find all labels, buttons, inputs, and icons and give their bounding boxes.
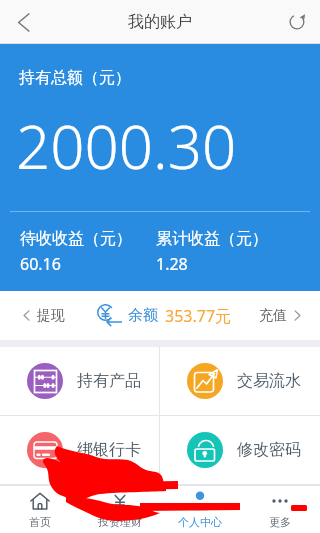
staticText: 353.77元 (165, 305, 232, 327)
button[interactable]: 充值 (240, 291, 320, 340)
button[interactable]: 交易流水 (160, 347, 320, 415)
staticText: 修改密码 (237, 440, 301, 460)
button[interactable]: 余额 (88, 291, 240, 340)
staticText: 首页 (29, 515, 51, 529)
staticText: 余额 (128, 306, 158, 325)
staticText: 60.16 (20, 253, 61, 275)
button[interactable]: 绑银行卡 (0, 416, 159, 484)
button[interactable]: Back (0, 0, 46, 44)
staticText: 提现 (37, 307, 65, 325)
staticText: 持有产品 (77, 371, 141, 391)
button[interactable]: 首页 (0, 486, 80, 533)
staticText: 充值 (259, 307, 287, 325)
staticText: 持有总额（元） (19, 68, 131, 88)
staticText: 1.28 (156, 253, 188, 275)
button[interactable]: 个人中心 (160, 486, 240, 533)
button[interactable]: 提现 (0, 291, 88, 340)
staticText: 绑银行卡 (77, 440, 141, 460)
button[interactable]: 修改密码 (160, 416, 320, 484)
staticText: 个人中心 (178, 515, 222, 529)
button[interactable]: 投资理财 (80, 486, 160, 533)
staticText: 交易流水 (237, 371, 301, 391)
staticText: 投资理财 (98, 515, 142, 529)
button[interactable]: 更多 (240, 486, 320, 533)
staticText: 2000.30 (16, 105, 237, 187)
staticText: 我的账户 (128, 12, 192, 32)
staticText: 更多 (269, 515, 291, 529)
button[interactable]: 持有产品 (0, 347, 159, 415)
staticText: 待收收益（元） (20, 229, 132, 249)
button[interactable]: Refresh (274, 0, 320, 44)
staticText: 累计收益（元） (156, 229, 268, 249)
